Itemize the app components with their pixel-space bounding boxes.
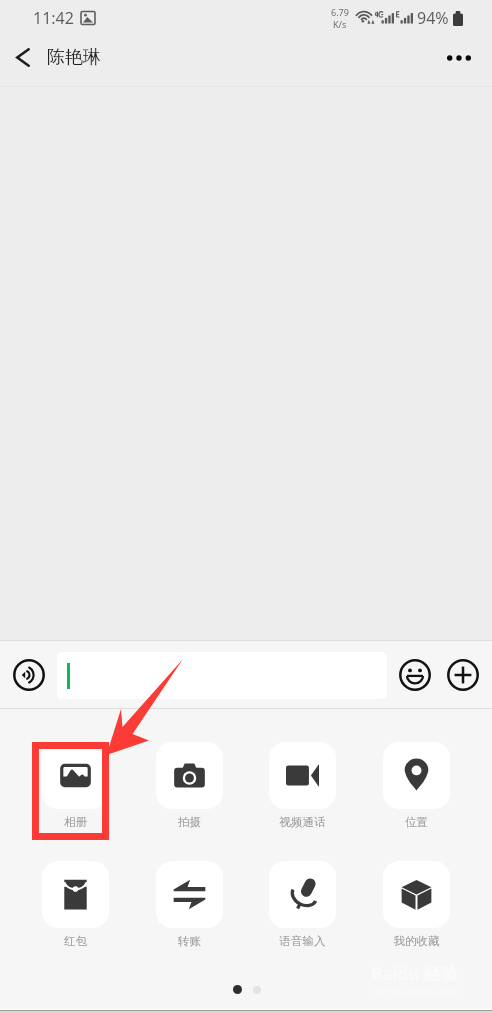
button[interactable]: More functions: [447, 659, 479, 691]
button[interactable]: 我的收藏: [371, 861, 462, 948]
button[interactable]: Voice input: [13, 659, 45, 691]
staticText: 我的收藏: [371, 934, 462, 948]
button[interactable]: 拍摄: [144, 742, 235, 829]
staticText: 6.79: [331, 6, 349, 18]
staticText: 相册: [30, 815, 121, 829]
button[interactable]: 语音输入: [257, 861, 348, 948]
staticText: 语音输入: [257, 934, 348, 948]
button[interactable]: Emoji: [399, 659, 431, 691]
button[interactable]: Back: [0, 36, 48, 86]
button[interactable]: 转账: [144, 861, 235, 948]
staticText: 陈艳琳: [47, 46, 101, 69]
staticText: 红包: [30, 934, 121, 948]
button[interactable]: More options: [438, 36, 492, 86]
staticText: 拍摄: [144, 815, 235, 829]
staticText: 视频通话: [257, 815, 348, 829]
button[interactable]: [57, 652, 387, 699]
button[interactable]: 相册: [30, 742, 121, 829]
staticText: 转账: [144, 934, 235, 948]
button[interactable]: 红包: [30, 861, 121, 948]
button[interactable]: 视频通话: [257, 742, 348, 829]
staticText: 94%: [417, 7, 449, 29]
button[interactable]: 位置: [371, 742, 462, 829]
staticText: K/s: [333, 18, 347, 30]
staticText: 11:42: [33, 7, 74, 29]
staticText: 位置: [371, 815, 462, 829]
